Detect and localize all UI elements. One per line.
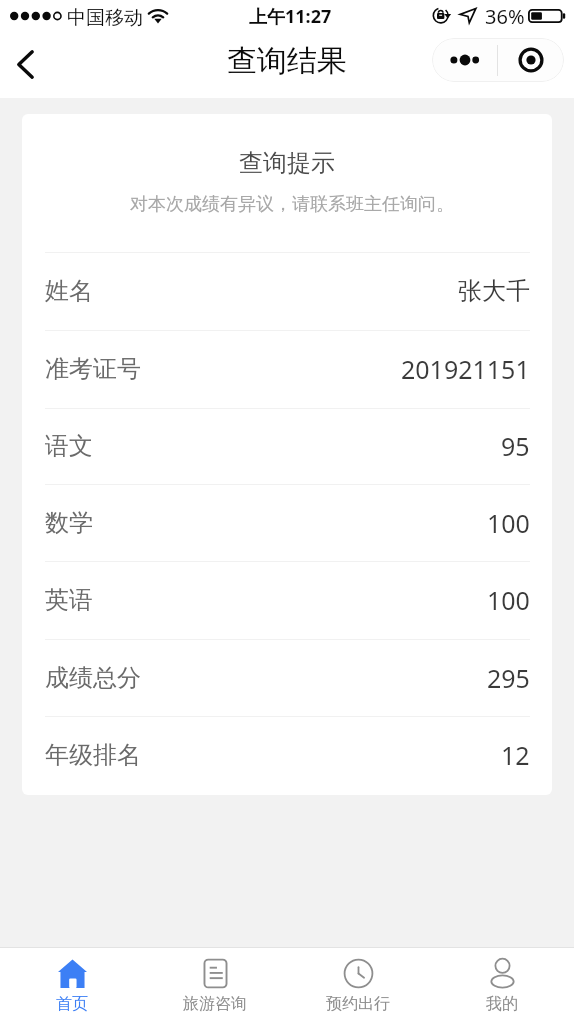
- staticText: 36%: [485, 3, 525, 30]
- staticText: 张大千: [458, 276, 530, 306]
- staticText: 95: [501, 429, 530, 463]
- button[interactable]: 旅游咨询: [143, 948, 286, 1024]
- staticText: 上午11:27: [249, 4, 332, 29]
- button[interactable]: 成绩总分: [45, 639, 530, 716]
- button[interactable]: 我的: [430, 948, 574, 1024]
- staticText: 姓名: [45, 276, 93, 306]
- staticText: 查询结果: [227, 42, 347, 80]
- button[interactable]: 预约出行: [286, 948, 430, 1024]
- staticText: 语文: [45, 431, 93, 461]
- button[interactable]: 年级排名: [45, 716, 530, 793]
- staticText: 对本次成绩有异议，请联系班主任询问。: [27, 193, 552, 216]
- button[interactable]: 首页: [0, 948, 143, 1024]
- button[interactable]: Back: [3, 40, 47, 84]
- staticText: 准考证号: [45, 354, 141, 384]
- staticText: 首页: [56, 994, 88, 1014]
- staticText: 100: [487, 583, 530, 617]
- button[interactable]: 数学: [45, 484, 530, 561]
- staticText: 查询提示: [22, 148, 552, 178]
- staticText: 年级排名: [45, 740, 141, 770]
- staticText: 100: [487, 506, 530, 540]
- button[interactable]: Close mini program: [498, 38, 564, 82]
- staticText: 预约出行: [326, 994, 390, 1014]
- staticText: 旅游咨询: [183, 994, 247, 1014]
- staticText: 201921151: [401, 352, 530, 386]
- staticText: 我的: [486, 994, 518, 1014]
- staticText: 数学: [45, 508, 93, 538]
- staticText: 中国移动: [67, 6, 143, 30]
- button[interactable]: 姓名: [45, 252, 530, 330]
- button[interactable]: 准考证号: [45, 330, 530, 408]
- staticText: 成绩总分: [45, 663, 141, 693]
- staticText: 12: [501, 738, 530, 772]
- button[interactable]: 英语: [45, 561, 530, 639]
- staticText: 295: [487, 661, 530, 695]
- button[interactable]: More options: [432, 38, 497, 82]
- staticText: 英语: [45, 585, 93, 615]
- button[interactable]: 语文: [45, 408, 530, 484]
